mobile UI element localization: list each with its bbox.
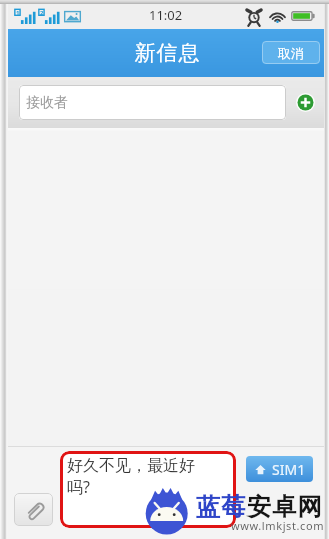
staticText: 好久不见，最近好吗? bbox=[67, 456, 197, 498]
button[interactable]: 好久不见，最近好吗? bbox=[60, 451, 236, 528]
staticText: 2 bbox=[40, 9, 44, 17]
staticText: 蓝莓 bbox=[196, 492, 247, 522]
button[interactable]: Add recipient bbox=[289, 86, 322, 119]
button[interactable]: 接收者 bbox=[19, 85, 286, 120]
staticText: SIM1 bbox=[272, 460, 306, 479]
staticText: 11:02 bbox=[149, 6, 183, 24]
button[interactable]: 取消 bbox=[262, 41, 320, 64]
staticText: 接收者 bbox=[26, 94, 68, 112]
button[interactable]: Attach bbox=[14, 493, 53, 526]
staticText: 安卓网 bbox=[247, 492, 323, 522]
button[interactable]: SIM1 bbox=[246, 456, 313, 482]
staticText: 1 bbox=[16, 9, 20, 17]
staticText: 新信息 bbox=[134, 40, 200, 66]
staticText: 取消 bbox=[278, 45, 304, 61]
staticText: www.lmkjst.com bbox=[231, 518, 325, 533]
